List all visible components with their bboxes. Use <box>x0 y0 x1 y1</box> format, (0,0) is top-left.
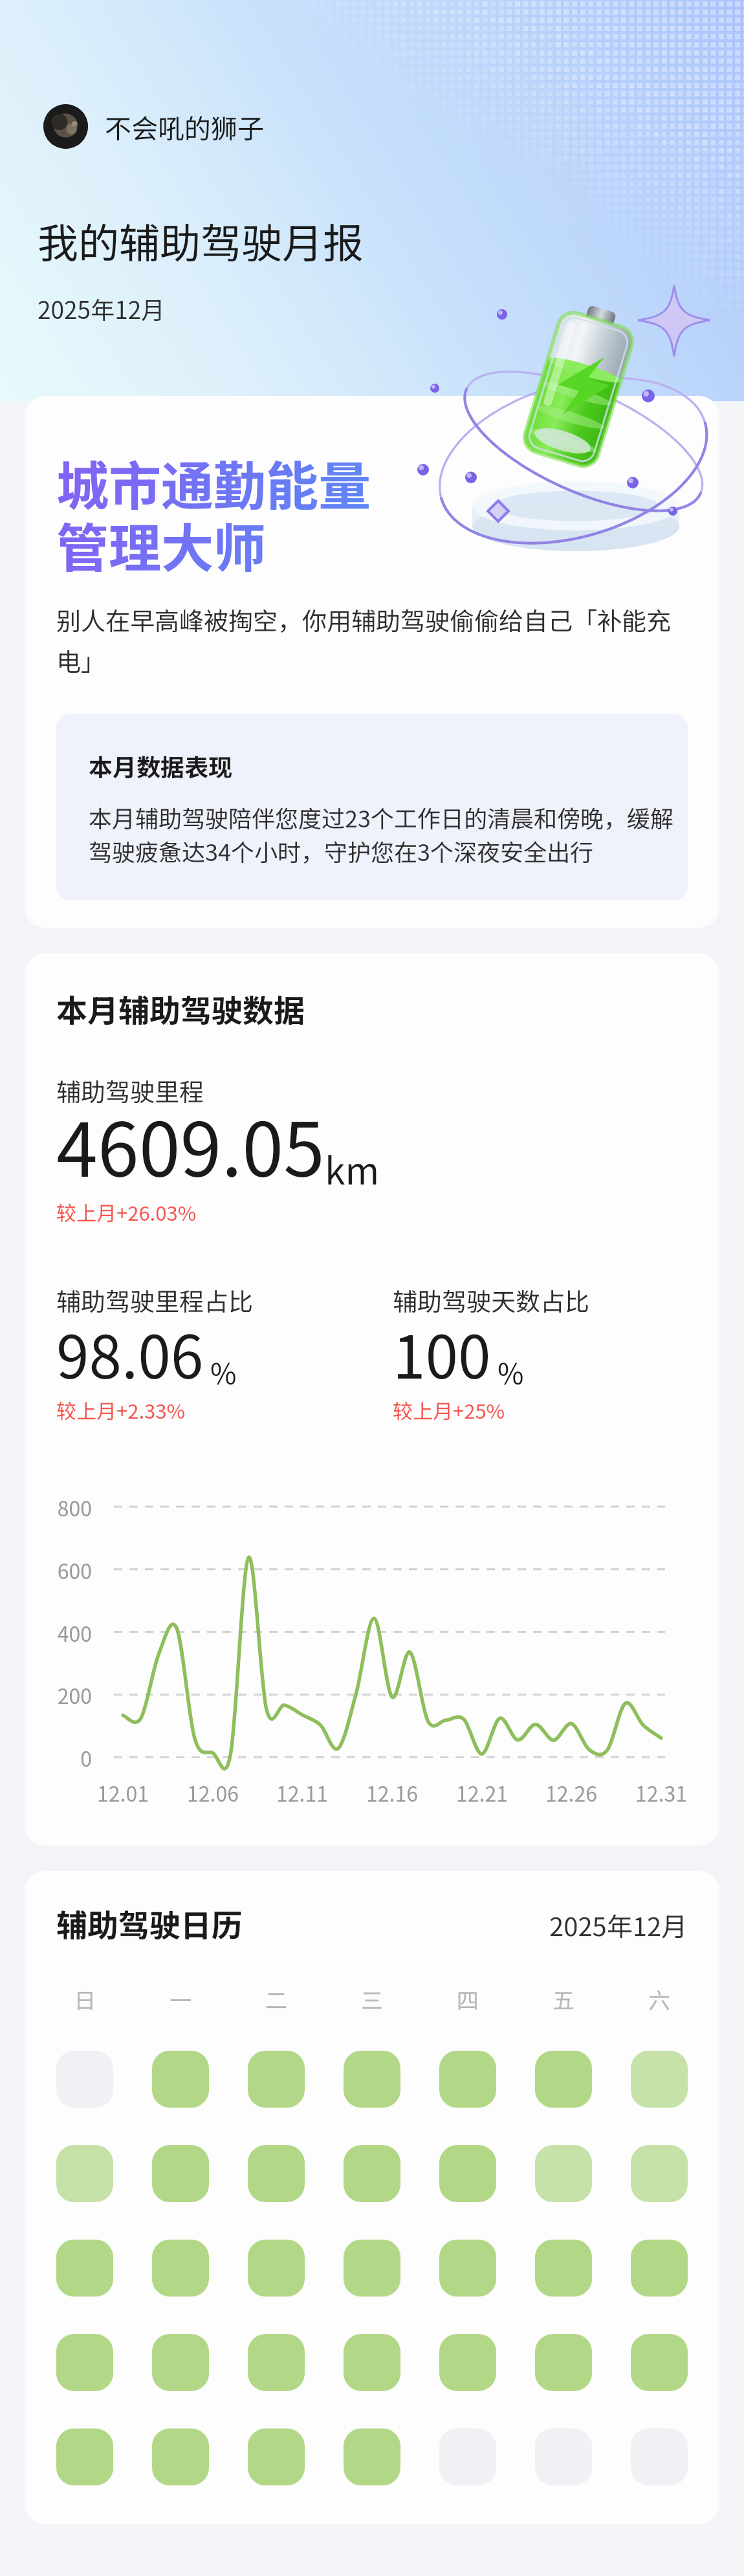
staticText: 四 <box>457 1983 479 2015</box>
staticText: 辅助驾驶日历 <box>56 1901 243 1946</box>
staticText: 2025年12月 <box>549 1906 688 1944</box>
button[interactable] <box>56 2145 113 2202</box>
button[interactable] <box>535 2145 592 2202</box>
button[interactable] <box>439 2334 496 2391</box>
button[interactable] <box>535 2051 592 2108</box>
staticText: 不会吼的狮子 <box>105 107 264 146</box>
staticText: 12.01 <box>71 1778 175 1807</box>
staticText: 五 <box>553 1983 574 2015</box>
button[interactable] <box>631 2051 688 2108</box>
button[interactable] <box>439 2051 496 2108</box>
staticText: 较上月+26.03% <box>56 1197 197 1227</box>
staticText: 较上月+25% <box>393 1395 505 1424</box>
staticText: % <box>498 1351 524 1393</box>
button[interactable] <box>535 2429 592 2485</box>
staticText: km <box>325 1142 380 1195</box>
button[interactable] <box>535 2240 592 2297</box>
staticText: 我的辅助驾驶月报 <box>38 211 364 270</box>
staticText: 较上月+2.33% <box>56 1395 185 1424</box>
staticText: 辅助驾驶里程 <box>56 1073 204 1108</box>
button[interactable] <box>344 2051 400 2108</box>
staticText: 12.21 <box>430 1778 534 1807</box>
staticText: 400 <box>56 1618 92 1648</box>
staticText: 本月数据表现 <box>89 748 232 783</box>
staticText: % <box>210 1351 237 1393</box>
button[interactable] <box>248 2145 305 2202</box>
button[interactable] <box>631 2240 688 2297</box>
button[interactable] <box>248 2051 305 2108</box>
staticText: 4609.05 <box>56 1091 325 1199</box>
staticText: 六 <box>648 1983 670 2015</box>
staticText: 本月辅助驾驶陪伴您度过23个工作日的清晨和傍晚，缓解驾驶疲惫达34个小时，守护您… <box>89 800 679 868</box>
button[interactable] <box>631 2334 688 2391</box>
button[interactable] <box>344 2145 400 2202</box>
staticText: 12.31 <box>609 1778 713 1807</box>
button[interactable] <box>152 2240 209 2297</box>
staticText: 12.06 <box>161 1778 265 1807</box>
button[interactable] <box>248 2240 305 2297</box>
staticText: 别人在早高峰被掏空，你用辅助驾驶偷偷给自己「补能充电」 <box>56 602 688 678</box>
button[interactable] <box>248 2429 305 2485</box>
button[interactable] <box>439 2429 496 2485</box>
staticText: 本月辅助驾驶数据 <box>56 986 305 1031</box>
staticText: 城市通勤能量 管理大师 <box>56 444 371 582</box>
staticText: 600 <box>56 1555 92 1585</box>
button[interactable] <box>344 2334 400 2391</box>
staticText: 12.16 <box>340 1778 444 1807</box>
staticText: 98.06 <box>56 1310 204 1395</box>
staticText: 二 <box>265 1983 287 2015</box>
button[interactable] <box>56 2429 113 2485</box>
button[interactable] <box>56 2051 113 2108</box>
staticText: 2025年12月 <box>38 291 166 326</box>
button[interactable] <box>439 2240 496 2297</box>
button[interactable] <box>248 2334 305 2391</box>
button[interactable] <box>439 2145 496 2202</box>
button[interactable] <box>56 2334 113 2391</box>
button[interactable] <box>631 2145 688 2202</box>
staticText: 100 <box>393 1310 491 1395</box>
staticText: 12.11 <box>250 1778 354 1807</box>
staticText: 三 <box>361 1983 383 2015</box>
button[interactable] <box>152 2334 209 2391</box>
button[interactable] <box>152 2051 209 2108</box>
staticText: 日 <box>74 1983 96 2015</box>
staticText: 200 <box>56 1680 92 1710</box>
staticText: 一 <box>170 1983 191 2015</box>
staticText: 辅助驾驶天数占比 <box>393 1282 590 1318</box>
staticText: 0 <box>56 1743 92 1773</box>
button[interactable] <box>152 2429 209 2485</box>
button[interactable] <box>631 2429 688 2485</box>
button[interactable] <box>344 2240 400 2297</box>
button[interactable] <box>152 2145 209 2202</box>
staticText: 辅助驾驶里程占比 <box>56 1282 254 1318</box>
button[interactable]: 不会吼的狮子 <box>43 104 264 149</box>
staticText: 12.26 <box>520 1778 623 1807</box>
staticText: 800 <box>56 1492 92 1522</box>
button[interactable] <box>344 2429 400 2485</box>
button[interactable] <box>56 2240 113 2297</box>
button[interactable] <box>535 2334 592 2391</box>
